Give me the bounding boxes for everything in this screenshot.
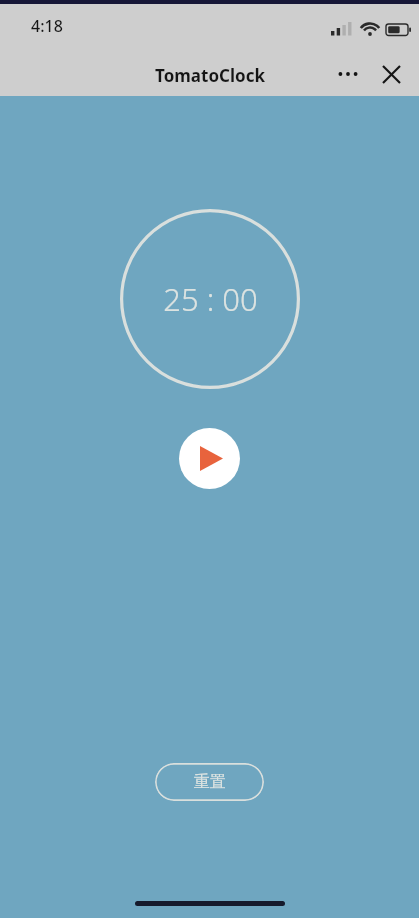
staticText: 4:18: [31, 15, 63, 37]
staticText: 25 : 00: [163, 278, 258, 320]
button[interactable]: Start timer: [179, 428, 240, 489]
staticText: TomatoClock: [155, 64, 265, 87]
button[interactable]: Close: [373, 57, 409, 91]
staticText: 重置: [194, 772, 226, 792]
button[interactable]: More options: [329, 57, 367, 91]
button[interactable]: 重置: [155, 763, 264, 801]
